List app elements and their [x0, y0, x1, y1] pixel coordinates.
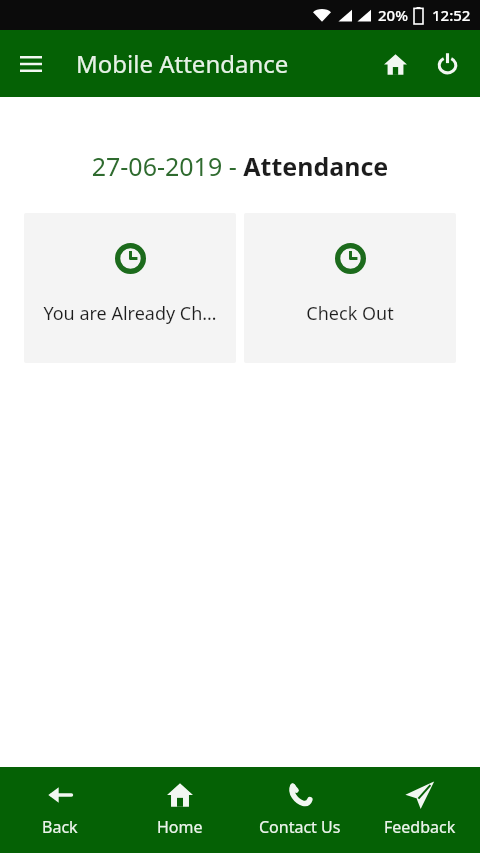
staticText: 12:52: [432, 5, 471, 25]
staticText: 27-06-2019 - Attendance: [0, 149, 480, 183]
button[interactable]: Feedback: [360, 773, 480, 847]
staticText: Check Out: [306, 301, 394, 326]
staticText: Contact Us: [259, 816, 341, 838]
button[interactable]: Contact Us: [240, 773, 360, 847]
button[interactable]: Back: [0, 773, 120, 847]
staticText: Home: [157, 816, 203, 838]
staticText: Feedback: [384, 816, 456, 838]
staticText: 20%: [378, 5, 408, 25]
button[interactable]: You are Already Ch…: [24, 213, 236, 363]
staticText: Back: [42, 816, 78, 838]
button[interactable]: Logout: [424, 41, 470, 87]
button[interactable]: Home: [120, 773, 240, 847]
button[interactable]: Home: [372, 41, 418, 87]
button[interactable]: Check Out: [244, 213, 456, 363]
staticText: Mobile Attendance: [76, 47, 289, 80]
staticText: You are Already Ch…: [43, 301, 217, 326]
button[interactable]: Open navigation menu: [8, 41, 54, 87]
